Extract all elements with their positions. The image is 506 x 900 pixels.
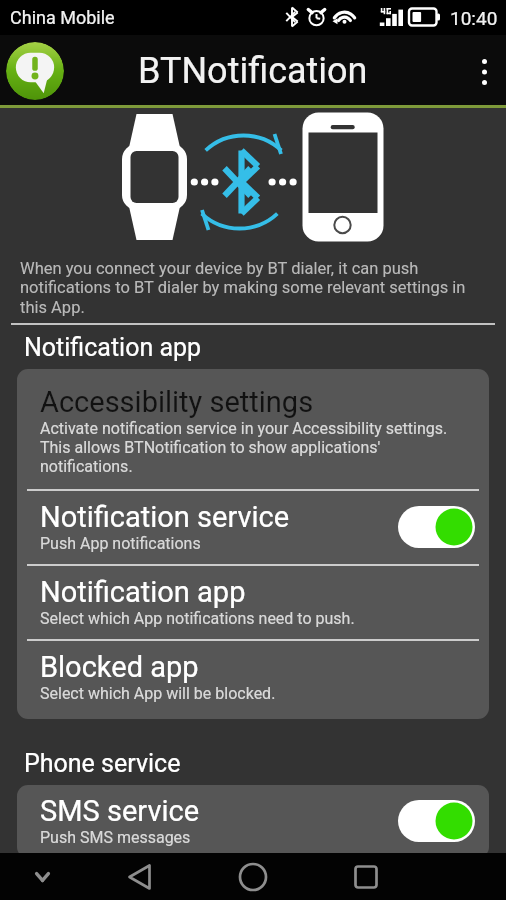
staticText: Activate notification service in your Ac… <box>40 419 475 476</box>
button[interactable]: Blocked app <box>17 641 489 719</box>
staticText: Select which App will be blocked. <box>40 684 276 703</box>
staticText: Phone service <box>24 749 181 778</box>
staticText: China Mobile <box>10 7 115 28</box>
staticText: When you connect your device by BT diale… <box>20 259 494 317</box>
button[interactable]: Notification service <box>17 491 489 564</box>
button[interactable]: Back <box>118 853 162 900</box>
staticText: Accessibility settings <box>40 385 314 419</box>
button[interactable]: App icon <box>6 42 64 100</box>
staticText: Notification app <box>40 575 246 609</box>
staticText: BTNotification <box>138 50 368 92</box>
button[interactable]: Toggle <box>398 506 475 548</box>
button[interactable]: Toggle <box>398 800 475 842</box>
staticText: Blocked app <box>40 650 199 684</box>
button[interactable]: SMS service <box>17 785 489 858</box>
button[interactable]: Recents <box>344 853 388 900</box>
staticText: Push App notifications <box>40 534 201 553</box>
staticText: Push SMS messages <box>40 828 191 847</box>
button[interactable]: More options <box>462 38 506 106</box>
staticText: Notification service <box>40 500 290 534</box>
button[interactable]: Notification app <box>17 566 489 639</box>
staticText: 10:40 <box>450 7 498 29</box>
staticText: Select which App notifications need to p… <box>40 609 355 628</box>
button[interactable]: Home <box>231 853 275 900</box>
staticText: Notification app <box>24 333 202 362</box>
button[interactable]: Accessibility settings <box>17 369 489 489</box>
button[interactable]: Hide keyboard <box>20 853 64 900</box>
staticText: SMS service <box>40 794 200 828</box>
